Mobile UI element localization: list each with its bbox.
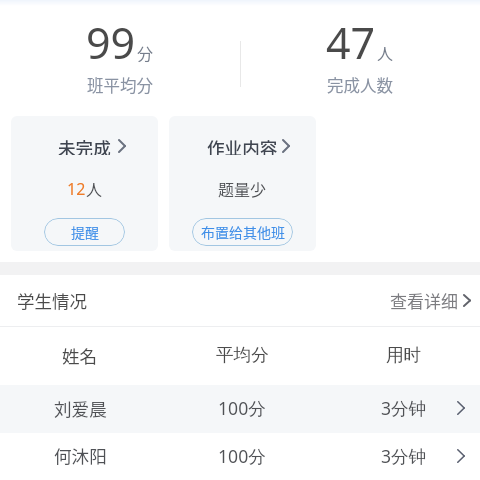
staticText: 班平均分 <box>87 73 153 97</box>
staticText: 平均分 <box>216 344 269 366</box>
other: 查看 刘爱晨 <box>457 401 465 415</box>
staticText: 未完成 <box>58 135 111 155</box>
button[interactable]: 作业内容 <box>169 116 316 251</box>
other: 查看 何沐阳 <box>457 449 465 463</box>
staticText: 人 <box>377 41 394 64</box>
staticText: 100分 <box>218 444 266 468</box>
staticText: 何沐阳 <box>54 443 107 468</box>
staticText: 作业内容 <box>207 135 278 155</box>
staticText: 100分 <box>218 396 266 420</box>
staticText: 3分钟 <box>381 444 427 468</box>
staticText: 题量少 <box>218 177 267 200</box>
staticText: 布置给其他班 <box>201 222 285 242</box>
button[interactable]: 学生情况 <box>0 275 480 326</box>
staticText: 用时 <box>386 344 422 366</box>
staticText: 查看详细 <box>390 288 458 313</box>
staticText: 刘爱晨 <box>54 396 107 421</box>
staticText: 学生情况 <box>17 288 87 313</box>
staticText: 人 <box>86 177 103 200</box>
button[interactable]: 刘爱晨 <box>0 385 480 433</box>
staticText: 3分钟 <box>381 396 427 420</box>
staticText: 分 <box>137 41 154 64</box>
staticText: 12 <box>67 178 86 200</box>
staticText: 47 <box>326 13 376 72</box>
button[interactable]: 提醒 <box>44 218 125 246</box>
staticText: 完成人数 <box>327 73 393 97</box>
staticText: 姓名 <box>62 343 98 368</box>
staticText: 99 <box>86 13 136 72</box>
staticText: 提醒 <box>71 222 99 242</box>
button[interactable]: 何沐阳 <box>0 433 480 480</box>
button[interactable]: 布置给其他班 <box>192 218 293 246</box>
button[interactable]: 未完成 <box>11 116 158 251</box>
